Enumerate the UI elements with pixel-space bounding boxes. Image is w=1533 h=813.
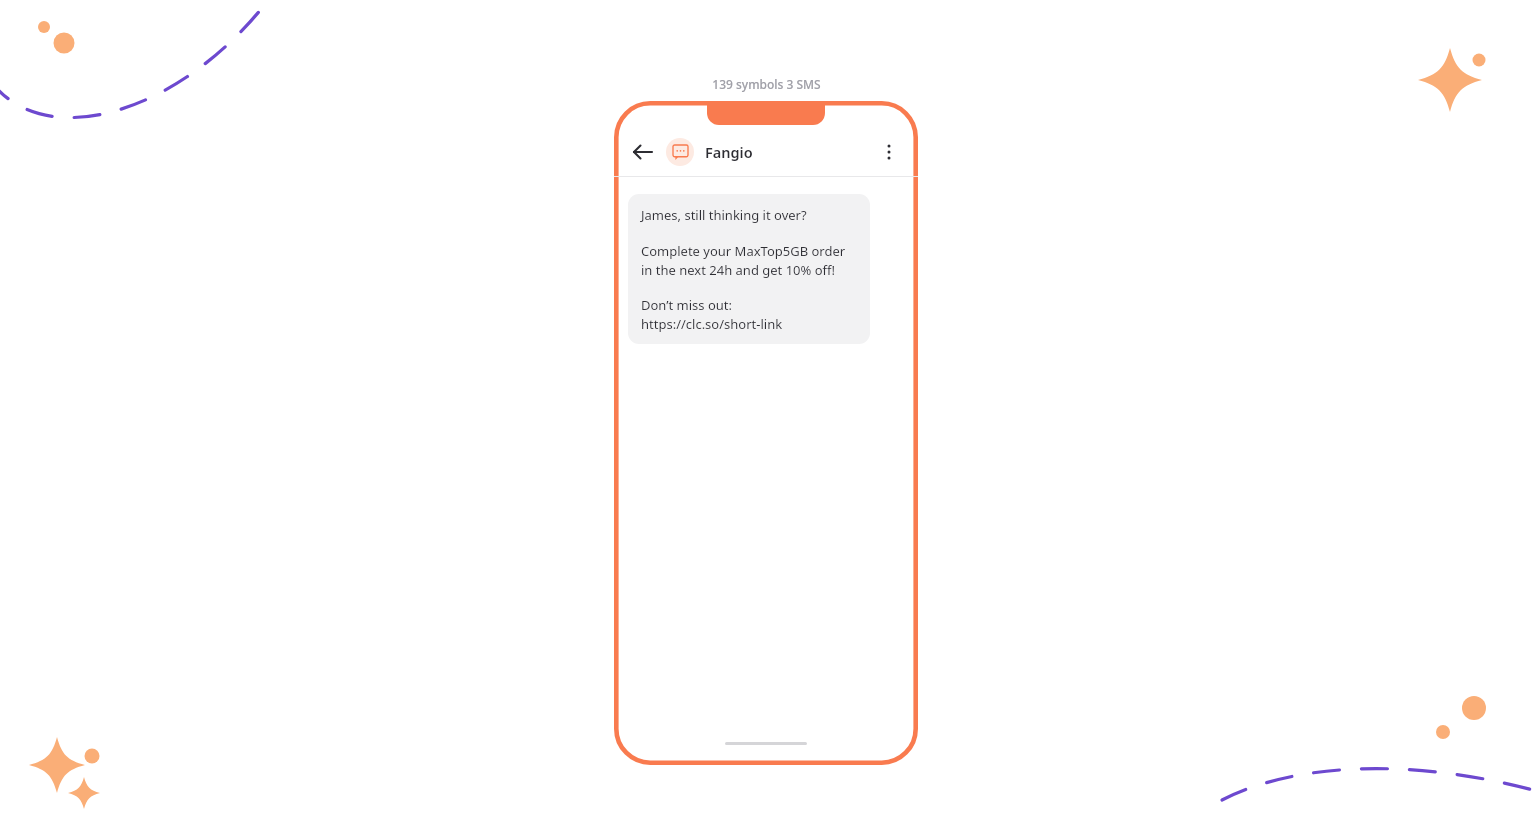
staticText: Complete your MaxTop5GB order in the nex… [641,242,857,278]
button[interactable]: James, still thinking it over? [628,194,870,344]
staticText: 139 symbols 3 SMS [712,76,821,92]
button[interactable]: More options [876,139,902,165]
staticText: James, still thinking it over? [641,206,807,224]
staticText: Fangio [705,142,753,162]
button[interactable]: Back [630,139,656,165]
button[interactable]: Conversation avatar [666,138,694,166]
staticText: Don’t miss out: https://clc.so/short-lin… [641,296,783,332]
